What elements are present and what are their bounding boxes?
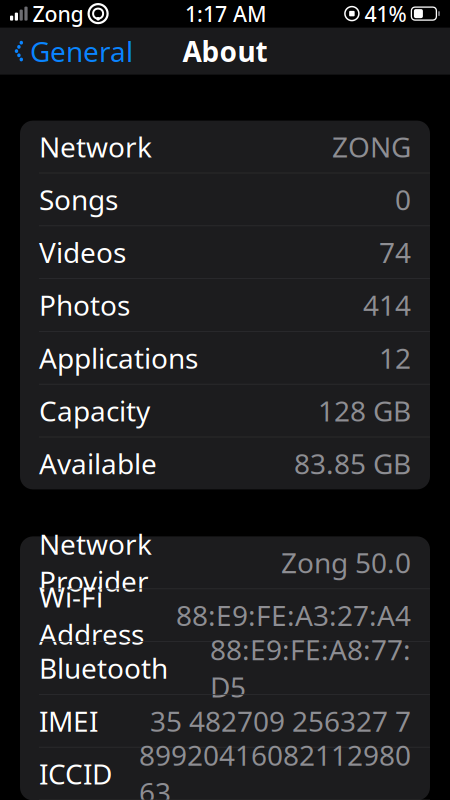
staticText: 88:E9:FE:A3:27:A4 xyxy=(176,597,411,634)
button[interactable]: Applications xyxy=(20,332,430,384)
staticText: Songs xyxy=(39,181,118,218)
staticText: Bluetooth xyxy=(39,649,168,687)
staticText: Network Provider xyxy=(39,525,152,600)
button[interactable]: Bluetooth xyxy=(20,642,430,694)
staticText: ICCID xyxy=(39,755,112,792)
button[interactable]: ICCID xyxy=(20,748,430,800)
staticText: About xyxy=(182,32,267,70)
staticText: 88:E9:FE:A8:77:D5 xyxy=(210,631,411,705)
staticText: General xyxy=(30,32,133,70)
staticText: 12 xyxy=(379,339,411,376)
button[interactable]: Songs xyxy=(20,173,430,225)
button[interactable]: Capacity xyxy=(20,385,430,437)
staticText: Zong 50.0 xyxy=(281,544,411,581)
staticText: IMEI xyxy=(39,702,98,739)
staticText: Available xyxy=(39,445,157,482)
staticText: Capacity xyxy=(39,392,150,429)
button[interactable]: Wi-Fi Address xyxy=(20,589,430,641)
button[interactable]: Network Provider xyxy=(20,536,430,588)
staticText: Network xyxy=(39,128,152,165)
button[interactable]: Network xyxy=(20,121,430,173)
staticText: 0 xyxy=(395,181,411,218)
button[interactable]: Videos xyxy=(20,226,430,278)
button[interactable]: Available xyxy=(20,437,430,489)
button[interactable]: IMEI xyxy=(20,695,430,747)
staticText: Wi-Fi Address xyxy=(39,578,144,652)
staticText: Photos xyxy=(39,286,130,324)
staticText: ZONG xyxy=(332,128,411,165)
staticText: 83.85 GB xyxy=(294,445,411,482)
staticText: Videos xyxy=(39,234,126,271)
staticText: 128 GB xyxy=(318,392,411,429)
staticText: Applications xyxy=(39,339,198,376)
staticText: 74 xyxy=(379,234,411,271)
staticText: 41% xyxy=(364,0,406,28)
staticText: Zong xyxy=(33,0,84,28)
staticText: 8992041608211298063 xyxy=(139,736,411,800)
staticText: 1:17 AM xyxy=(185,0,267,28)
staticText: 35 482709 256327 7 xyxy=(150,702,411,739)
button[interactable]: Back to General xyxy=(0,24,133,78)
staticText: 414 xyxy=(363,286,411,324)
button[interactable]: Photos xyxy=(20,279,430,331)
